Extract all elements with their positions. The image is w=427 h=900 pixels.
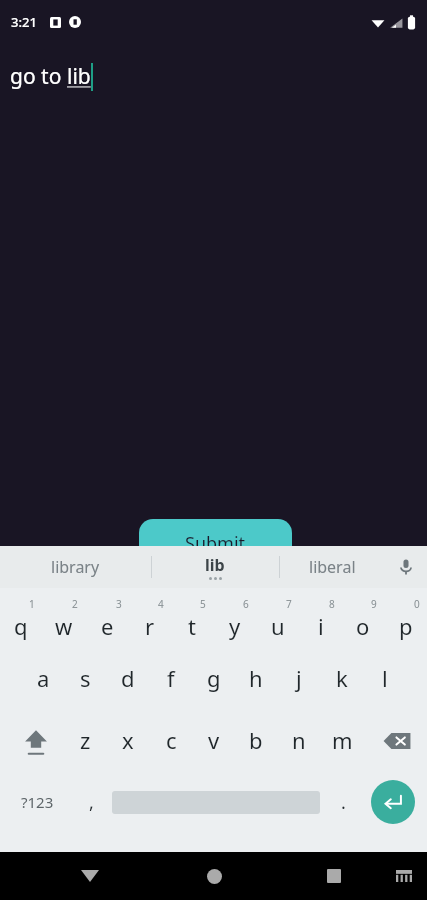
button[interactable]: 0 xyxy=(385,588,427,650)
staticText: r xyxy=(145,611,155,641)
button[interactable]: c xyxy=(150,718,192,774)
staticText: n xyxy=(292,725,306,755)
button[interactable]: j xyxy=(278,656,320,712)
staticText: i xyxy=(318,611,324,641)
button[interactable]: Shift xyxy=(10,718,62,774)
staticText: 0 xyxy=(414,597,420,611)
button[interactable]: Backspace xyxy=(371,718,423,774)
staticText: d xyxy=(121,663,135,693)
staticText: e xyxy=(101,611,114,641)
staticText: library xyxy=(51,556,100,578)
staticText: v xyxy=(208,725,220,755)
staticText: j xyxy=(296,663,302,693)
button[interactable]: 7 xyxy=(257,588,299,650)
button[interactable]: k xyxy=(321,656,363,712)
staticText: u xyxy=(271,611,285,641)
button[interactable]: . xyxy=(322,780,364,840)
staticText: m xyxy=(332,725,353,755)
button[interactable]: Home xyxy=(190,852,238,900)
button[interactable]: m xyxy=(321,718,363,774)
staticText: c xyxy=(166,725,177,755)
button[interactable]: x xyxy=(107,718,149,774)
button[interactable]: Switch keyboard xyxy=(380,852,427,900)
button[interactable]: lib xyxy=(151,546,279,588)
staticText: lib xyxy=(205,554,225,576)
button[interactable]: ?123 xyxy=(4,780,70,840)
staticText: z xyxy=(80,725,91,755)
button[interactable]: Submit xyxy=(139,519,292,565)
staticText: 2 xyxy=(72,597,78,611)
button[interactable]: Enter xyxy=(364,780,422,840)
staticText: b xyxy=(249,725,263,755)
button[interactable]: v xyxy=(193,718,235,774)
button[interactable]: Space xyxy=(112,780,320,840)
staticText: 7 xyxy=(286,597,292,611)
staticText: s xyxy=(80,663,91,693)
staticText: 8 xyxy=(329,597,335,611)
staticText: lib xyxy=(67,62,91,91)
button[interactable]: 9 xyxy=(342,588,384,650)
button[interactable]: a xyxy=(22,656,64,712)
staticText: x xyxy=(122,725,134,755)
button[interactable]: 1 xyxy=(0,588,42,650)
staticText: w xyxy=(55,611,73,641)
staticText: 3 xyxy=(116,597,122,611)
staticText: t xyxy=(188,611,196,641)
staticText: liberal xyxy=(309,556,356,578)
button[interactable]: b xyxy=(235,718,277,774)
staticText: 9 xyxy=(371,597,377,611)
button[interactable]: s xyxy=(64,656,106,712)
button[interactable]: z xyxy=(64,718,106,774)
button[interactable]: 8 xyxy=(300,588,342,650)
staticText: l xyxy=(382,663,388,693)
staticText: 5 xyxy=(200,597,206,611)
staticText: Submit xyxy=(185,531,246,556)
staticText: g xyxy=(207,663,221,693)
button[interactable]: 5 xyxy=(171,588,213,650)
staticText: o xyxy=(356,611,370,641)
staticText: a xyxy=(37,663,50,693)
staticText: h xyxy=(249,663,263,693)
staticText: 3:21 xyxy=(11,13,37,31)
staticText: k xyxy=(336,663,348,693)
staticText: p xyxy=(399,611,413,641)
button[interactable]: Voice input xyxy=(385,546,427,588)
button[interactable]: 2 xyxy=(43,588,85,650)
staticText: f xyxy=(167,663,175,693)
button[interactable]: l xyxy=(364,656,406,712)
button[interactable]: library xyxy=(0,546,151,588)
button[interactable]: f xyxy=(150,656,192,712)
button[interactable]: Recents xyxy=(310,852,358,900)
staticText: 6 xyxy=(243,597,249,611)
staticText: go to xyxy=(10,62,67,91)
staticText: 1 xyxy=(29,597,35,611)
staticText: q xyxy=(14,611,28,641)
button[interactable]: h xyxy=(235,656,277,712)
button[interactable]: n xyxy=(278,718,320,774)
button[interactable]: , xyxy=(70,780,112,840)
button[interactable]: Hide keyboard xyxy=(66,852,114,900)
staticText: . xyxy=(341,790,346,815)
staticText: ?123 xyxy=(21,792,54,812)
button[interactable]: liberal xyxy=(279,546,385,588)
staticText: 4 xyxy=(158,597,164,611)
staticText: y xyxy=(229,611,241,641)
button[interactable]: 6 xyxy=(214,588,256,650)
button[interactable]: d xyxy=(107,656,149,712)
button[interactable]: g xyxy=(193,656,235,712)
button[interactable]: 3 xyxy=(86,588,128,650)
button[interactable]: 4 xyxy=(129,588,171,650)
staticText: , xyxy=(89,790,94,815)
